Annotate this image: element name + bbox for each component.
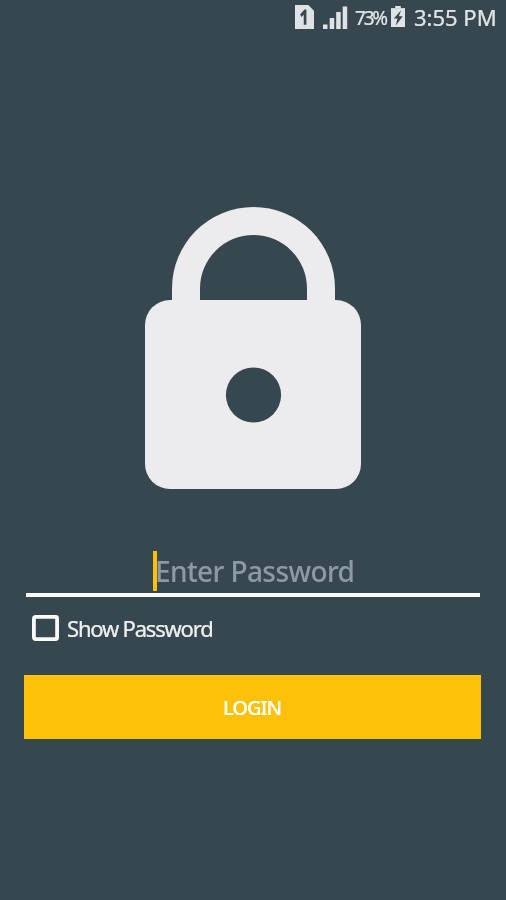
- staticText: Show Password: [67, 613, 213, 643]
- staticText: 73%: [355, 5, 386, 31]
- staticText: LOGIN: [223, 694, 282, 721]
- other: Locked padlock: [145, 207, 361, 307]
- staticText: Enter Password: [155, 552, 355, 590]
- other: Signal strength: [323, 6, 347, 29]
- button[interactable]: Password input field: [26, 548, 480, 597]
- other: Battery charging: [391, 6, 405, 27]
- button[interactable]: LOGIN: [24, 675, 481, 739]
- other: SIM card 1: [295, 5, 314, 29]
- staticText: 3:55 PM: [414, 2, 497, 32]
- button[interactable]: Show Password: [32, 607, 213, 649]
